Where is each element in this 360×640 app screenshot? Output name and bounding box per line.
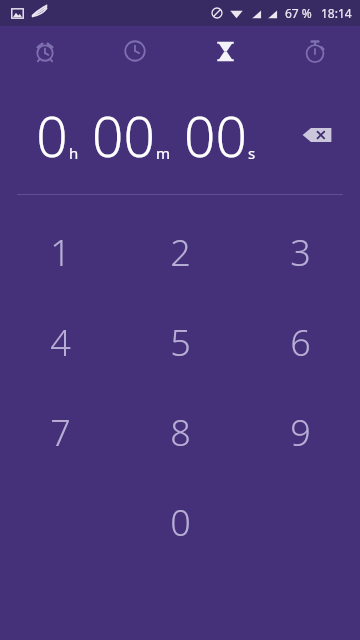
button[interactable]: Stopwatch: [270, 26, 360, 76]
button[interactable]: Alarm: [0, 26, 90, 76]
staticText: 0: [36, 98, 68, 173]
staticText: 8: [170, 408, 191, 457]
staticText: 2: [170, 228, 191, 277]
button[interactable]: 1: [0, 207, 120, 297]
staticText: 6: [290, 318, 311, 367]
staticText: 00: [184, 98, 247, 173]
staticText: 7: [50, 408, 71, 457]
button[interactable]: Backspace: [294, 112, 340, 158]
staticText: 0: [170, 498, 191, 547]
button[interactable]: 8: [120, 387, 240, 477]
button[interactable]: Clock: [90, 26, 180, 76]
button[interactable]: 4: [0, 297, 120, 387]
button[interactable]: 9: [240, 387, 360, 477]
button[interactable]: 2: [120, 207, 240, 297]
staticText: 9: [290, 408, 311, 457]
staticText: 1: [50, 228, 71, 277]
staticText: 4: [50, 318, 71, 367]
staticText: h: [69, 143, 79, 163]
staticText: 3: [290, 228, 311, 277]
staticText: 67 %: [285, 5, 312, 21]
button[interactable]: 7: [0, 387, 120, 477]
button[interactable]: 6: [240, 297, 360, 387]
staticText: m: [156, 143, 171, 163]
button[interactable]: 0: [120, 477, 240, 567]
staticText: 18:14: [321, 5, 352, 21]
staticText: 5: [170, 318, 191, 367]
button[interactable]: 5: [120, 297, 240, 387]
staticText: s: [248, 143, 256, 163]
button[interactable]: Timer: [180, 26, 270, 76]
button[interactable]: 3: [240, 207, 360, 297]
staticText: 00: [92, 98, 155, 173]
